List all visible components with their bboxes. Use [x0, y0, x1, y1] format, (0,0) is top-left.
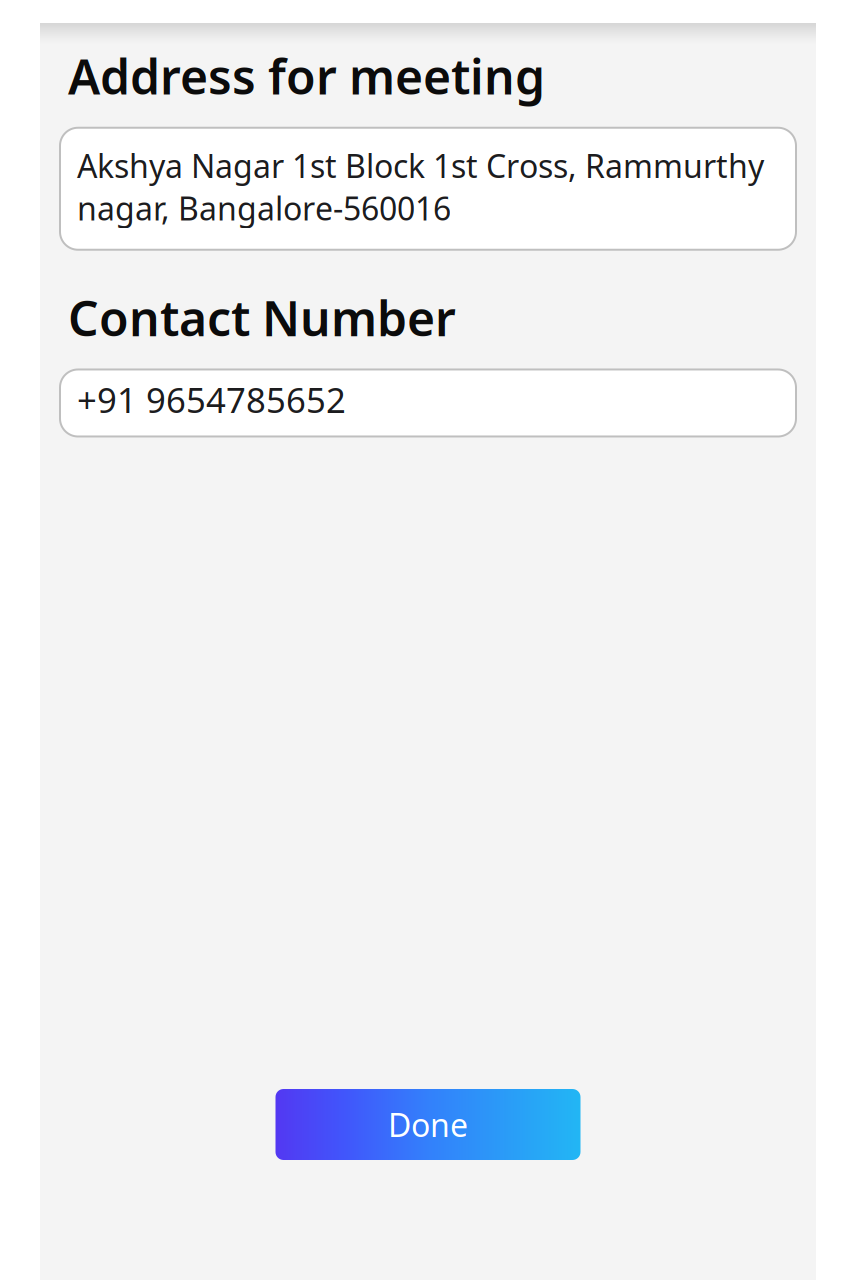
staticText: Address for meeting	[68, 44, 545, 108]
staticText: Contact Number	[68, 286, 456, 349]
button[interactable]: Akshya Nagar 1st Block 1st Cross, Rammur…	[60, 128, 796, 250]
button[interactable]: +91 9654785652	[60, 369, 796, 436]
staticText: +91 9654785652	[77, 376, 346, 422]
staticText: Done	[388, 1103, 468, 1146]
staticText: Akshya Nagar 1st Block 1st Cross, Rammur…	[77, 144, 764, 229]
button[interactable]: Done	[275, 1089, 580, 1160]
